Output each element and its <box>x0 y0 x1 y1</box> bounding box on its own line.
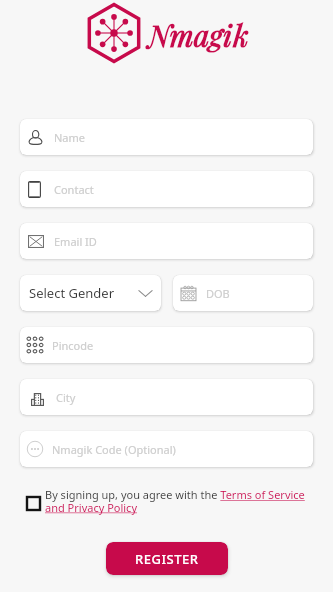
staticText: Contact <box>54 182 94 197</box>
button[interactable]: Contact <box>20 171 313 207</box>
button[interactable]: Email ID <box>20 223 313 259</box>
button[interactable]: Pincode <box>20 327 313 363</box>
staticText: Email ID <box>54 234 97 249</box>
staticText: City <box>56 390 76 405</box>
staticText: REGISTER <box>135 550 199 568</box>
button[interactable]: Name <box>20 119 313 155</box>
button[interactable]: Nmagik Code (Optional) <box>20 431 313 467</box>
staticText: Pincode <box>52 338 94 353</box>
button[interactable]: Agree to terms and privacy policy <box>26 496 41 511</box>
staticText: Nmagik Code (Optional) <box>52 442 176 457</box>
button[interactable]: REGISTER <box>106 542 228 575</box>
staticText: DOB <box>206 286 230 301</box>
button[interactable]: DOB <box>173 275 313 311</box>
staticText: Select Gender <box>29 284 114 302</box>
staticText: Nmagik <box>148 15 249 55</box>
button[interactable]: City <box>20 379 313 415</box>
staticText: Name <box>54 130 86 145</box>
button[interactable]: Select Gender <box>20 275 161 311</box>
staticText: By signing up, you agree with the Terms … <box>45 487 321 515</box>
